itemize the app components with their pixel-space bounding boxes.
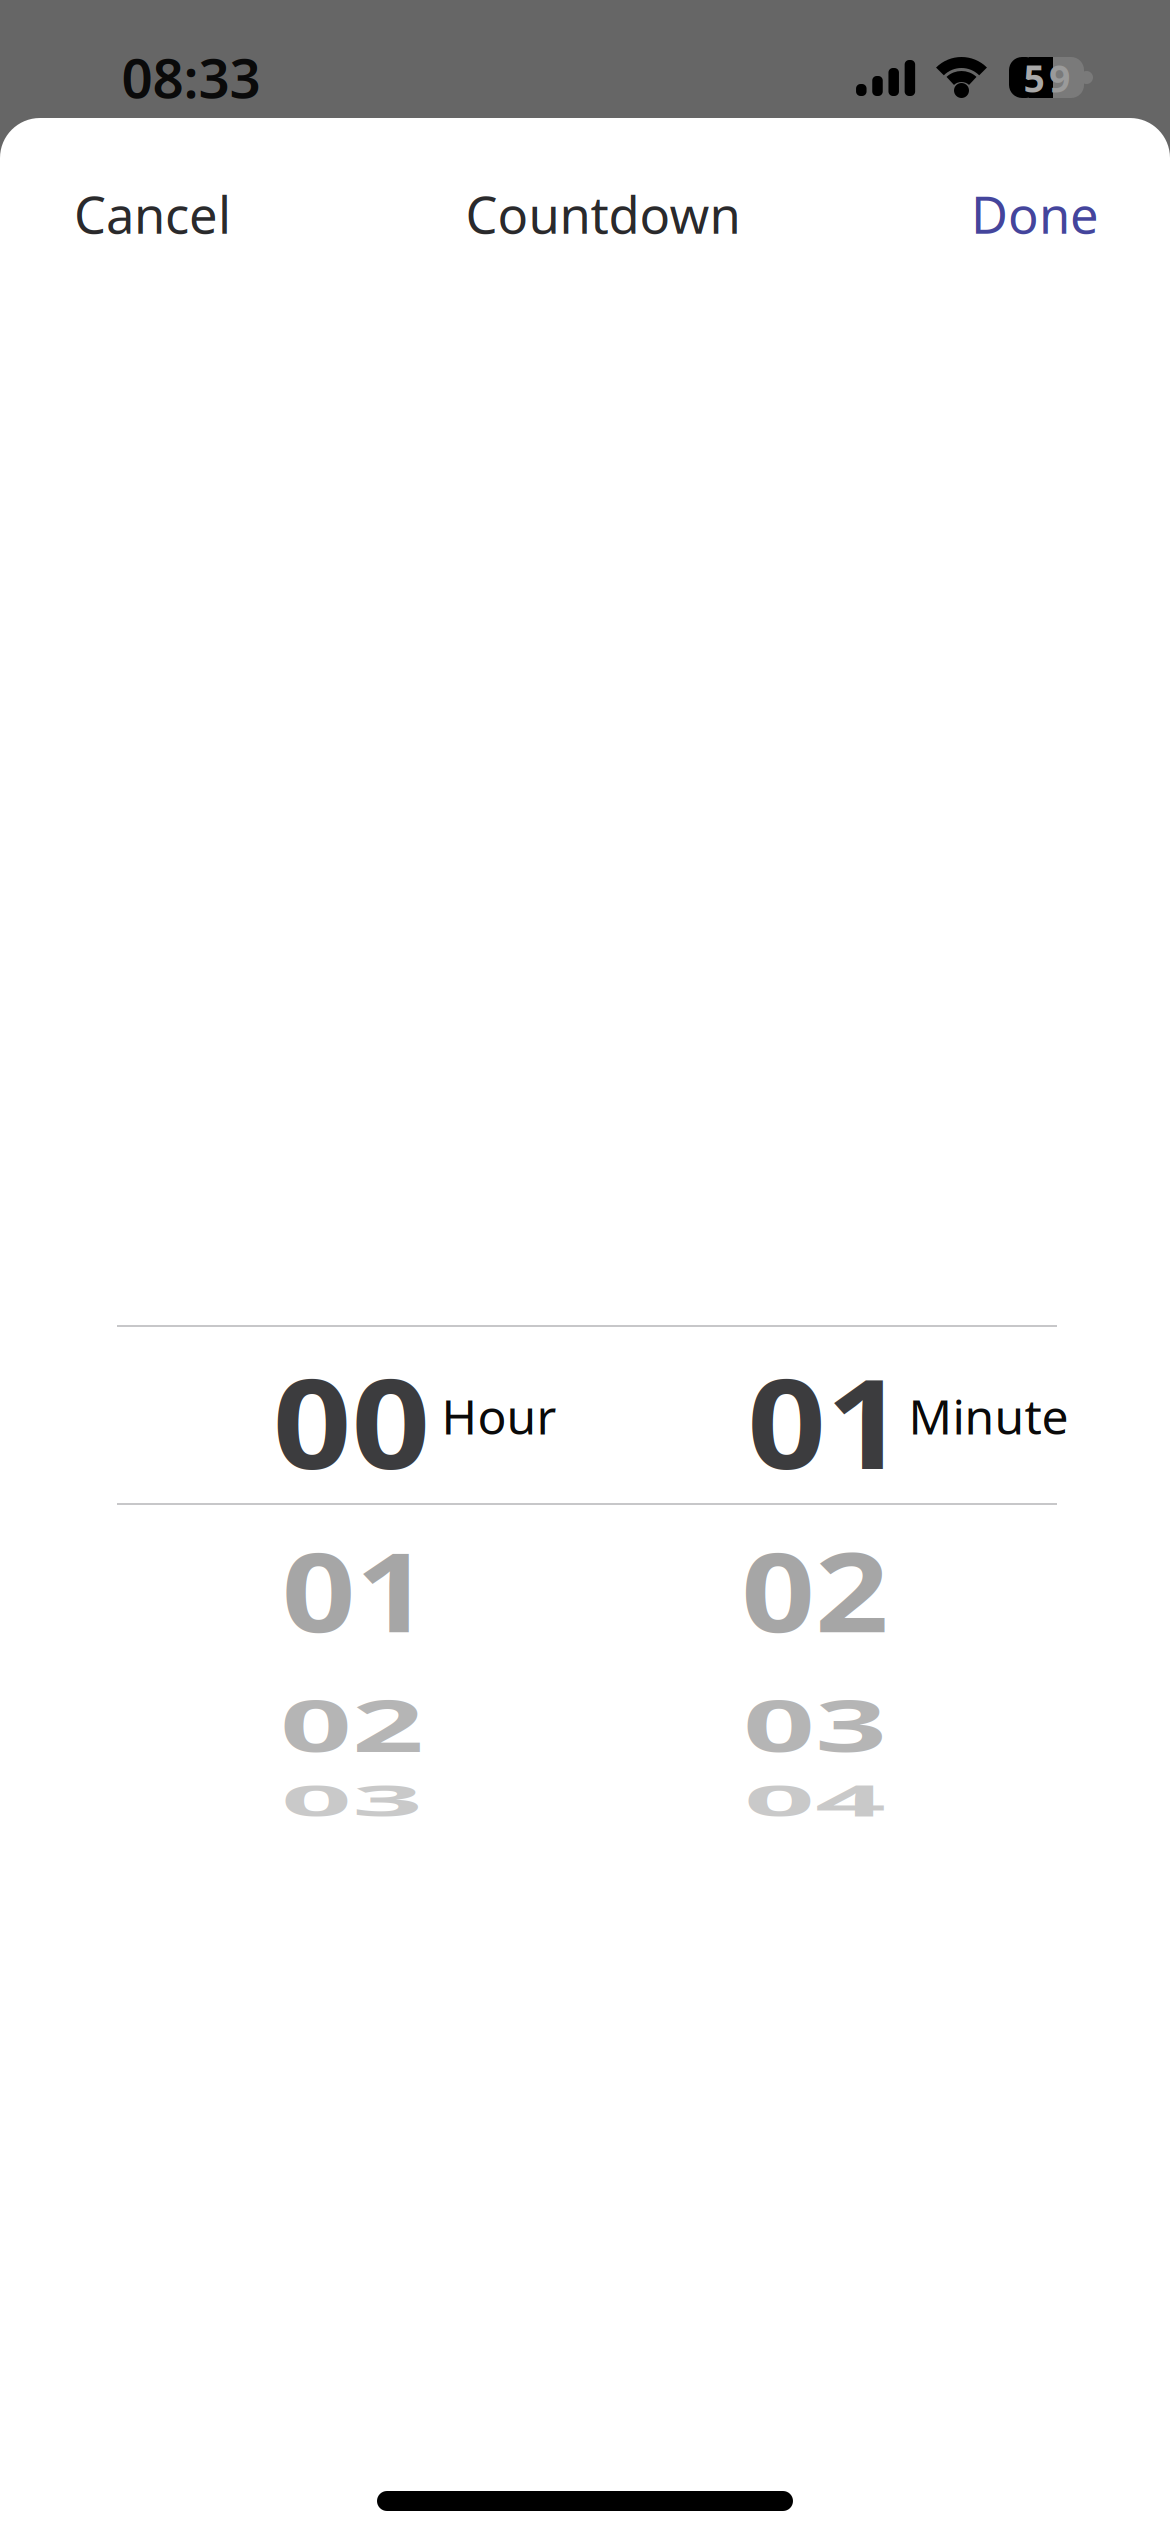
- staticText: 00: [280, 1339, 422, 1503]
- button[interactable]: Cancel: [74, 180, 231, 248]
- staticText: Hour: [441, 1384, 556, 1448]
- staticText: 9: [1049, 53, 1070, 103]
- staticText: 5: [1023, 53, 1044, 103]
- staticText: Countdown: [465, 180, 740, 248]
- staticText: 01: [284, 1508, 426, 1672]
- staticText: Done: [971, 180, 1099, 248]
- staticText: 01: [755, 1339, 897, 1503]
- staticText: 03: [281, 1718, 423, 1882]
- staticText: 02: [744, 1508, 886, 1672]
- staticText: Minute: [908, 1384, 1068, 1448]
- staticText: 04: [744, 1718, 886, 1882]
- button[interactable]: Done: [971, 180, 1099, 248]
- staticText: 08:33: [121, 41, 260, 113]
- staticText: 03: [744, 1642, 886, 1806]
- staticText: Cancel: [74, 180, 231, 248]
- staticText: 02: [281, 1642, 423, 1806]
